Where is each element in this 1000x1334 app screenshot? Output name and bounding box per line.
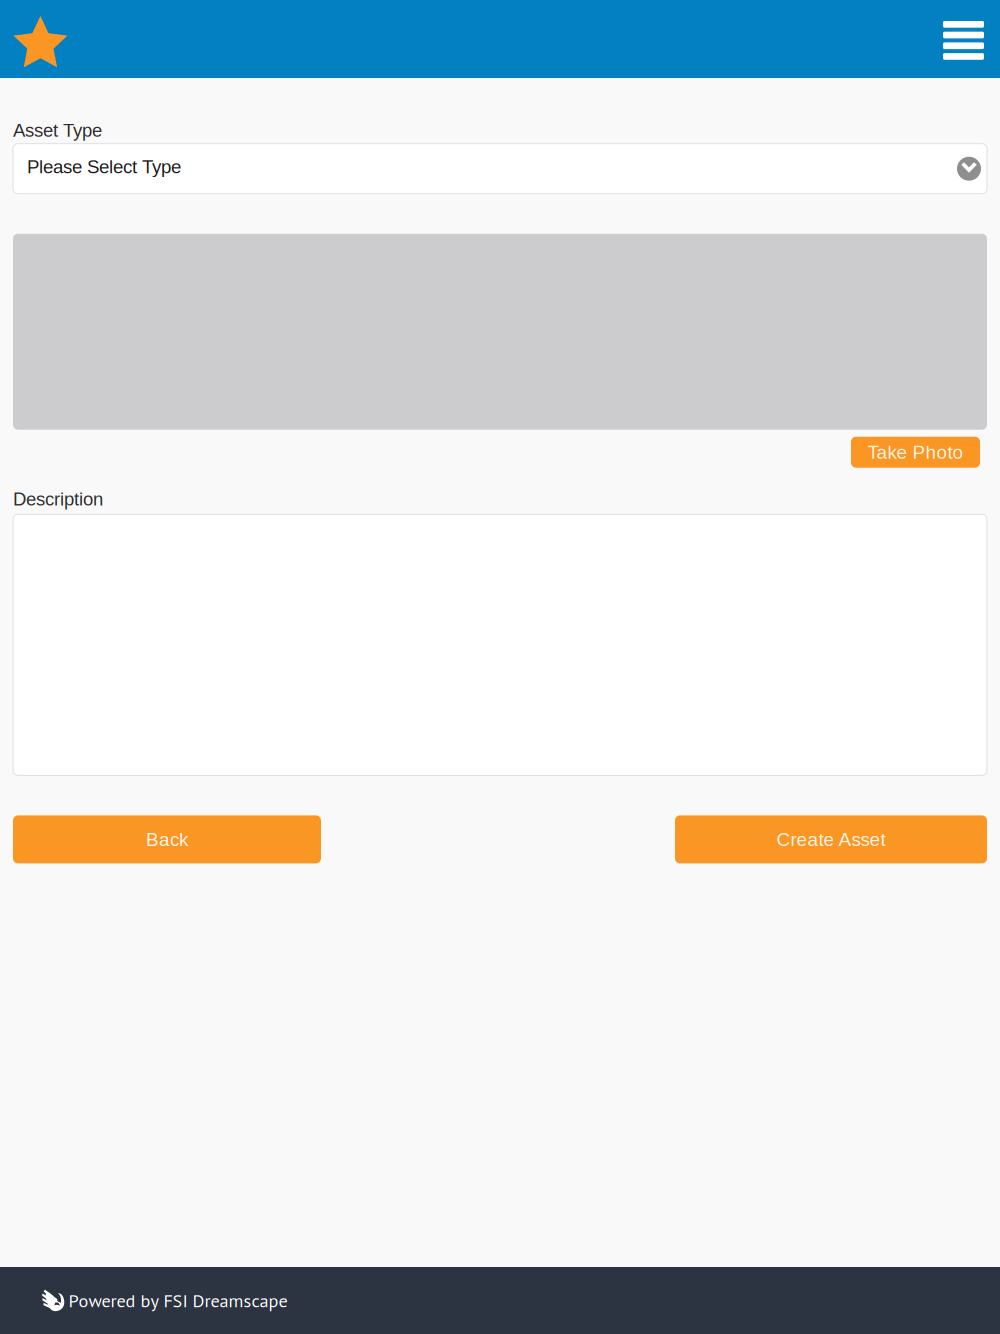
staticText: Create Asset [776,829,885,850]
button[interactable]: Home [13,0,69,78]
staticText: Powered by FSI Dreamscape [68,1289,287,1312]
button[interactable]: Please Select Type [13,144,987,194]
staticText: Take Photo [867,442,963,463]
button[interactable]: Back [13,815,321,863]
button[interactable]: Take Photo [851,437,980,468]
staticText: Description [13,489,103,509]
staticText: Please Select Type [27,156,181,177]
button[interactable]: Menu [943,0,984,78]
staticText: Back [146,829,188,850]
staticText: Asset Type [13,120,102,141]
button[interactable]: Create Asset [675,815,987,863]
